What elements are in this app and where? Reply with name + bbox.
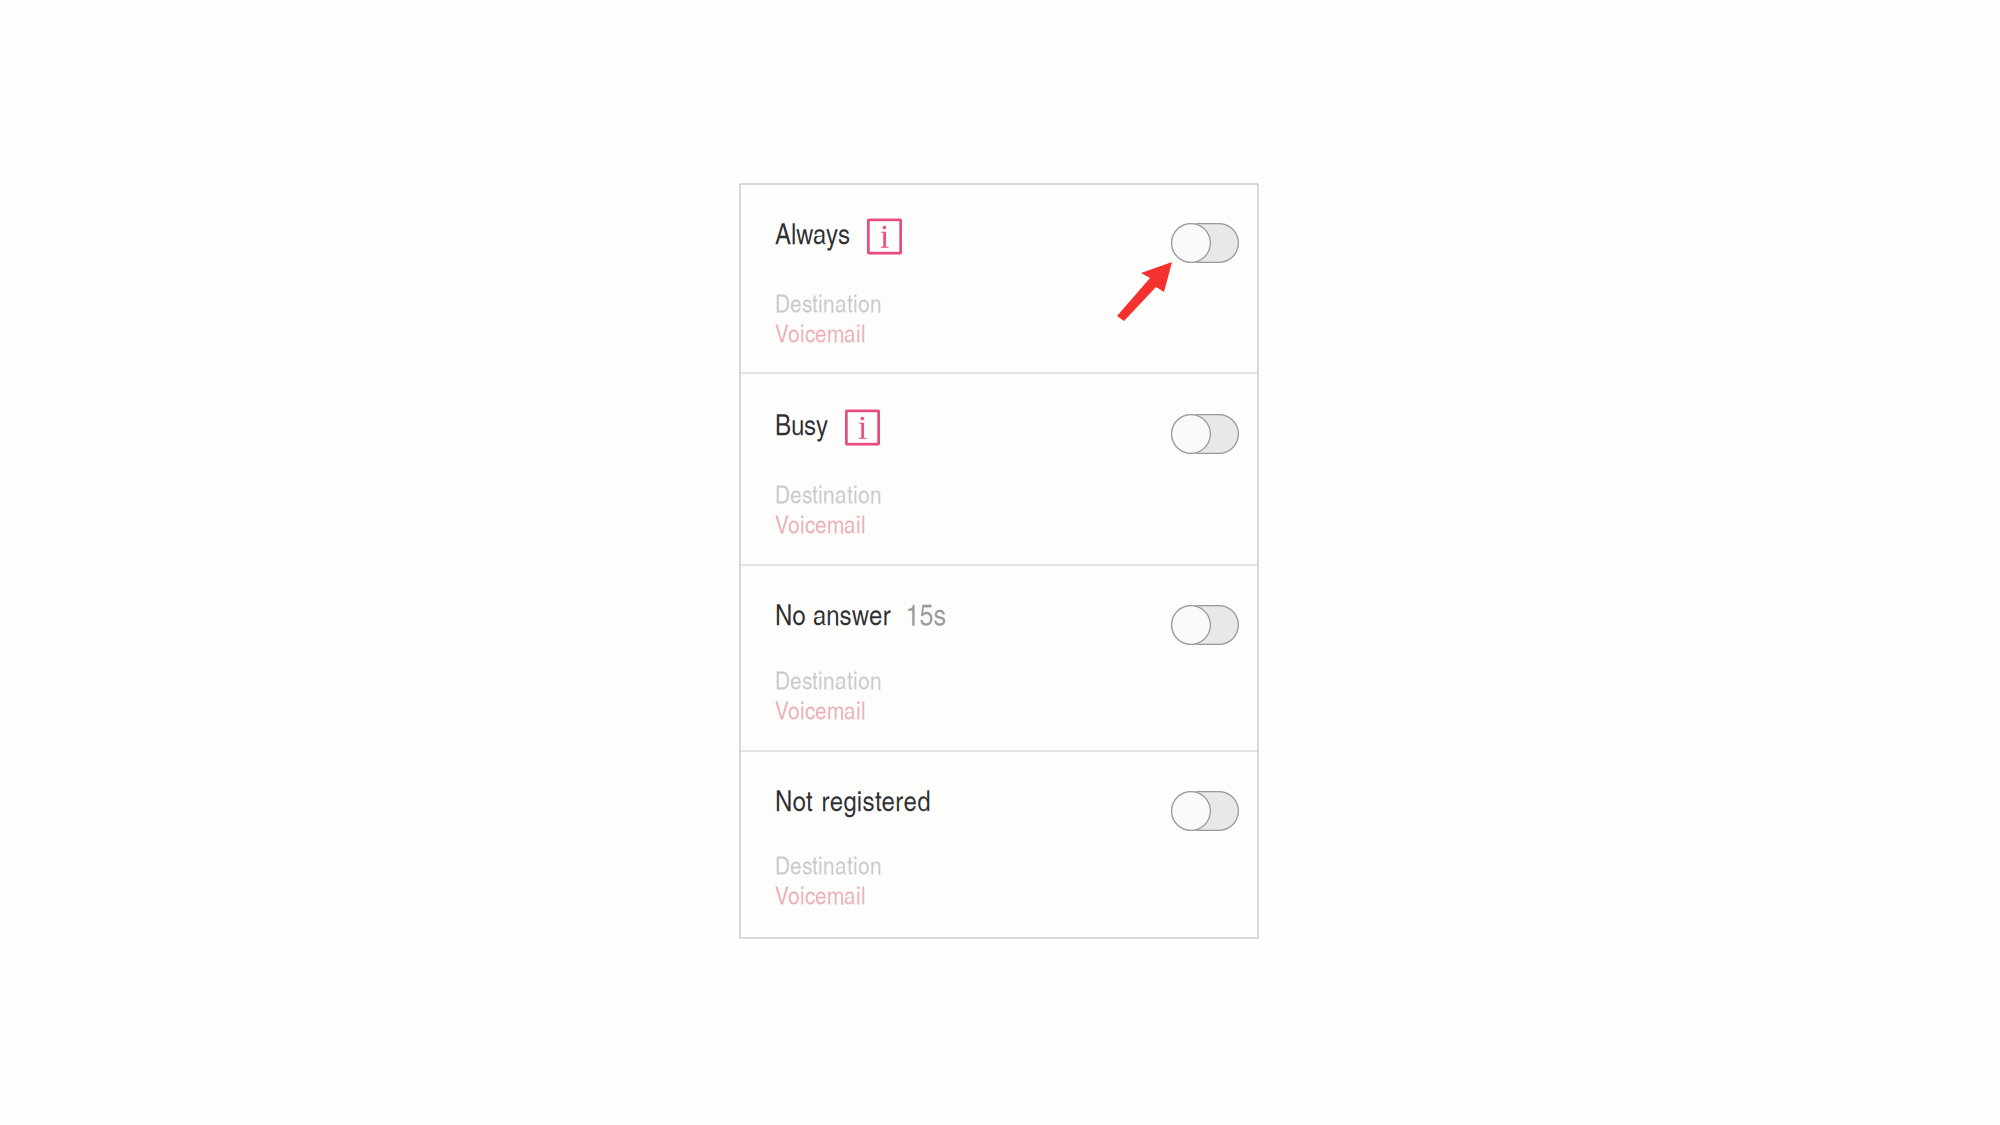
staticText: 15s: [905, 592, 946, 634]
button[interactable]: Not registered: [740, 752, 1258, 939]
staticText: Destination: [775, 847, 882, 882]
staticText: Destination: [775, 662, 882, 697]
button[interactable]: No answer: [740, 566, 1258, 750]
button[interactable]: More information: [845, 409, 880, 445]
staticText: Voicemail: [775, 315, 866, 350]
staticText: Destination: [775, 476, 882, 511]
button[interactable]: Busy: [740, 374, 1258, 564]
staticText: Busy: [775, 403, 828, 444]
staticText: Destination: [775, 285, 882, 320]
button[interactable]: Always: [740, 183, 1258, 372]
staticText: Always: [775, 212, 850, 253]
staticText: Voicemail: [775, 877, 866, 912]
staticText: i: [880, 218, 889, 255]
staticText: Not registered: [775, 779, 930, 820]
staticText: Voicemail: [775, 692, 866, 727]
staticText: Voicemail: [775, 506, 866, 541]
staticText: No answer: [775, 593, 890, 634]
staticText: i: [858, 409, 867, 446]
button[interactable]: More information: [867, 218, 902, 254]
